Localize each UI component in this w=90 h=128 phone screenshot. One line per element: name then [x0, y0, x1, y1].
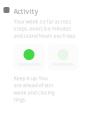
staticText: Your week so far across steps, exercise …	[13, 18, 76, 39]
staticText: Keep it up. You are ahead of last week a…	[13, 75, 54, 103]
staticText: Activity	[13, 7, 38, 16]
